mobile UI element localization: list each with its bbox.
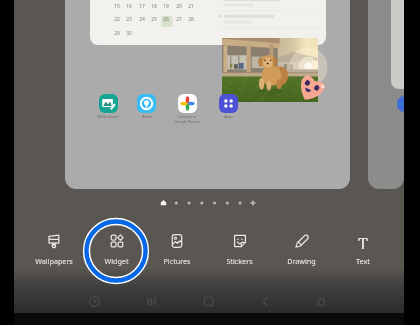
staticText: 27 [176, 16, 182, 23]
button[interactable]: Apps [209, 93, 247, 125]
staticText: 16 [126, 3, 132, 10]
staticText: Widget [104, 256, 129, 266]
staticText: 30 [126, 30, 132, 37]
staticText: 17 [139, 3, 145, 10]
staticText: 15 [114, 3, 120, 10]
staticText: 20 [176, 3, 182, 10]
button[interactable]: Stickers [206, 216, 272, 283]
button[interactable]: Widget [83, 216, 149, 283]
staticText: Apps [224, 114, 233, 119]
button[interactable]: Pictures [144, 216, 210, 283]
button[interactable]: Connect to Google Photos [168, 93, 206, 125]
staticText: 22 [114, 16, 120, 23]
staticText: 21 [188, 3, 194, 10]
button[interactable]: Drawing [268, 216, 334, 283]
button[interactable]: Recent apps history [81, 288, 107, 314]
staticText: Stickers [226, 256, 253, 266]
button[interactable]: Home [195, 288, 221, 314]
staticText: 24 [139, 16, 145, 23]
staticText: 18 [151, 3, 157, 10]
staticText: Wallpapers [35, 256, 73, 266]
staticText: 23 [126, 16, 132, 23]
button[interactable]: T [330, 216, 396, 283]
staticText: 29 [114, 30, 120, 37]
staticText: T [358, 233, 368, 249]
staticText: Connect to Google Photos [174, 114, 200, 124]
staticText: 28 [188, 16, 194, 23]
button[interactable]: Recent apps [138, 288, 164, 314]
staticText: 25 [151, 16, 157, 23]
button[interactable]: White Board [89, 93, 127, 125]
button[interactable]: Back [252, 288, 278, 314]
staticText: Pictures [163, 256, 191, 266]
staticText: White Board [97, 114, 119, 119]
button[interactable]: Wallpapers [21, 216, 87, 283]
staticText: 26 [163, 16, 169, 23]
button[interactable]: 15 [90, 0, 326, 45]
button[interactable]: Notifications [308, 288, 334, 314]
staticText: Drawing [287, 256, 316, 266]
button[interactable] [222, 38, 318, 102]
staticText: 19 [163, 3, 169, 10]
button[interactable]: Alexa [127, 93, 165, 125]
staticText: Text [356, 256, 370, 266]
staticText: Alexa [142, 114, 152, 119]
